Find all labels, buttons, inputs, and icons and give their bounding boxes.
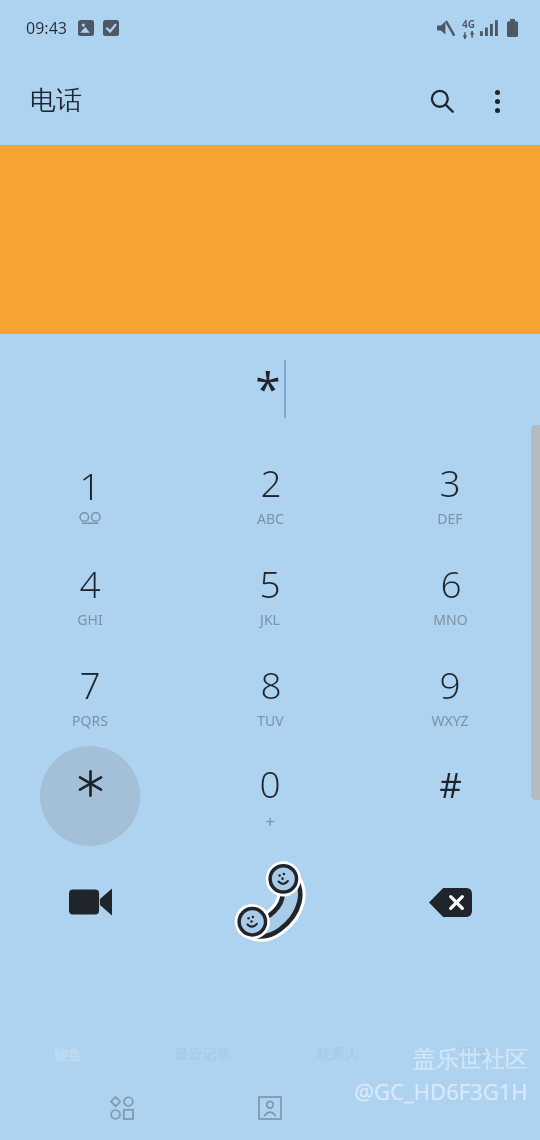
- button[interactable]: 1: [0, 442, 180, 543]
- button[interactable]: [0, 745, 180, 846]
- staticText: 9: [439, 659, 461, 709]
- staticText: 5: [259, 558, 281, 608]
- button[interactable]: 2: [180, 442, 360, 543]
- staticText: 最近记录: [175, 1046, 231, 1064]
- button[interactable]: More options: [473, 77, 521, 125]
- button[interactable]: Video call: [0, 846, 180, 958]
- staticText: 0: [259, 758, 281, 808]
- staticText: 2: [260, 457, 282, 507]
- button[interactable]: 7: [0, 644, 180, 745]
- staticText: 1: [79, 460, 101, 510]
- staticText: 3: [439, 457, 461, 507]
- button[interactable]: 6: [360, 543, 540, 644]
- button[interactable]: 8: [180, 644, 360, 745]
- button[interactable]: #: [360, 745, 540, 846]
- staticText: PQRS: [72, 711, 108, 730]
- staticText: #: [439, 761, 462, 809]
- button[interactable]: Call: [180, 846, 360, 958]
- staticText: TUV: [257, 711, 284, 730]
- staticText: 4: [79, 558, 101, 608]
- staticText: *: [255, 357, 281, 420]
- staticText: JKL: [260, 610, 280, 629]
- button[interactable]: 9: [360, 644, 540, 745]
- staticText: MNO: [433, 610, 468, 629]
- button[interactable]: Contacts: [246, 1084, 294, 1132]
- staticText: 7: [79, 659, 101, 709]
- staticText: 置顶: [459, 1046, 487, 1064]
- staticText: 6: [440, 558, 462, 608]
- button[interactable]: 3: [360, 442, 540, 543]
- staticText: 盖乐世社区: [413, 1045, 528, 1074]
- staticText: GHI: [77, 610, 103, 629]
- staticText: ABC: [257, 509, 284, 528]
- staticText: 键盘: [54, 1046, 82, 1064]
- staticText: 8: [260, 659, 282, 709]
- button[interactable]: Recents: [98, 1084, 146, 1132]
- staticText: 4G: [462, 17, 475, 31]
- button[interactable]: 5: [180, 543, 360, 644]
- button[interactable]: Backspace: [360, 846, 540, 958]
- button[interactable]: Search: [418, 77, 466, 125]
- button[interactable]: 0: [180, 745, 360, 846]
- staticText: 09:43: [26, 17, 67, 39]
- button[interactable]: 4: [0, 543, 180, 644]
- staticText: 联系人: [317, 1046, 359, 1064]
- staticText: 电话: [30, 84, 82, 117]
- button[interactable]: 置顶: [405, 1034, 540, 1076]
- staticText: +: [265, 810, 275, 833]
- staticText: WXYZ: [431, 711, 469, 730]
- staticText: DEF: [437, 509, 463, 528]
- staticText: @GC_HD6F3G1H: [354, 1076, 528, 1106]
